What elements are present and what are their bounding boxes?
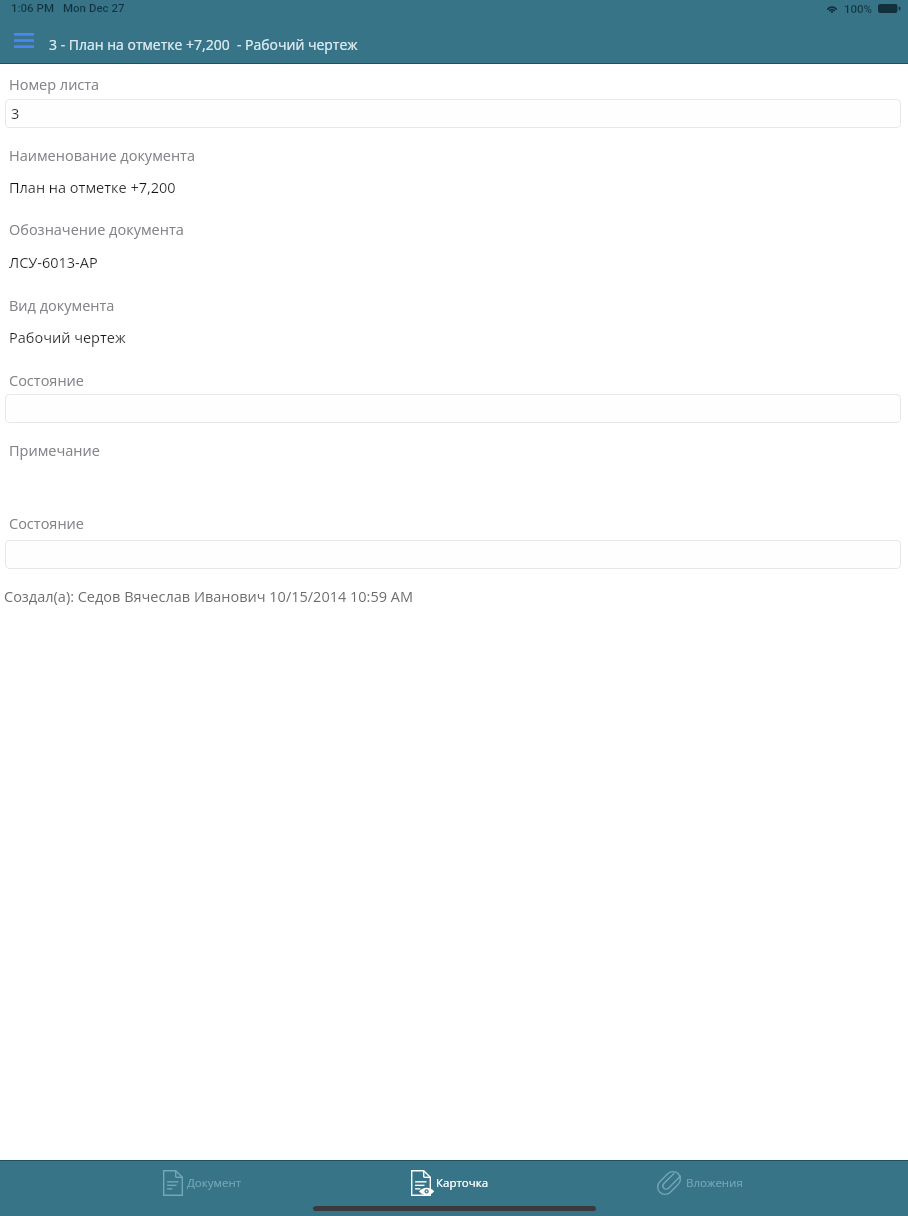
staticText: Создал(а): Седов Вячеслав Иванович 10/15… [4,587,413,607]
staticText: Mon Dec 27 [63,1,125,14]
button[interactable]: Документ [163,1170,242,1196]
button[interactable]: 3 [5,99,901,128]
staticText: Рабочий чертеж [9,328,126,348]
button[interactable]: Карточка [411,1170,489,1196]
button[interactable]: Open navigation menu [8,26,40,55]
staticText: 100% [844,2,873,15]
staticText: План на отметке +7,200 [9,178,176,198]
staticText: ЛСУ-6013-АР [9,253,98,273]
staticText: Карточка [436,1175,489,1191]
staticText: Номер листа [9,75,100,95]
staticText: Обозначение документа [9,220,184,240]
staticText: 1:06 PM [11,1,54,14]
staticText: Состояние [9,514,84,534]
staticText: 3 [11,104,20,124]
staticText: Вид документа [9,296,115,316]
staticText: Примечание [9,441,100,461]
button[interactable] [5,540,901,569]
staticText: Состояние [9,371,84,391]
staticText: Документ [187,1175,242,1191]
staticText: Наименование документа [9,146,195,166]
button[interactable]: Вложения [657,1170,743,1196]
staticText: 3 - План на отметке +7,200 - Рабочий чер… [49,35,358,54]
button[interactable] [5,394,901,423]
staticText: Вложения [686,1175,743,1191]
